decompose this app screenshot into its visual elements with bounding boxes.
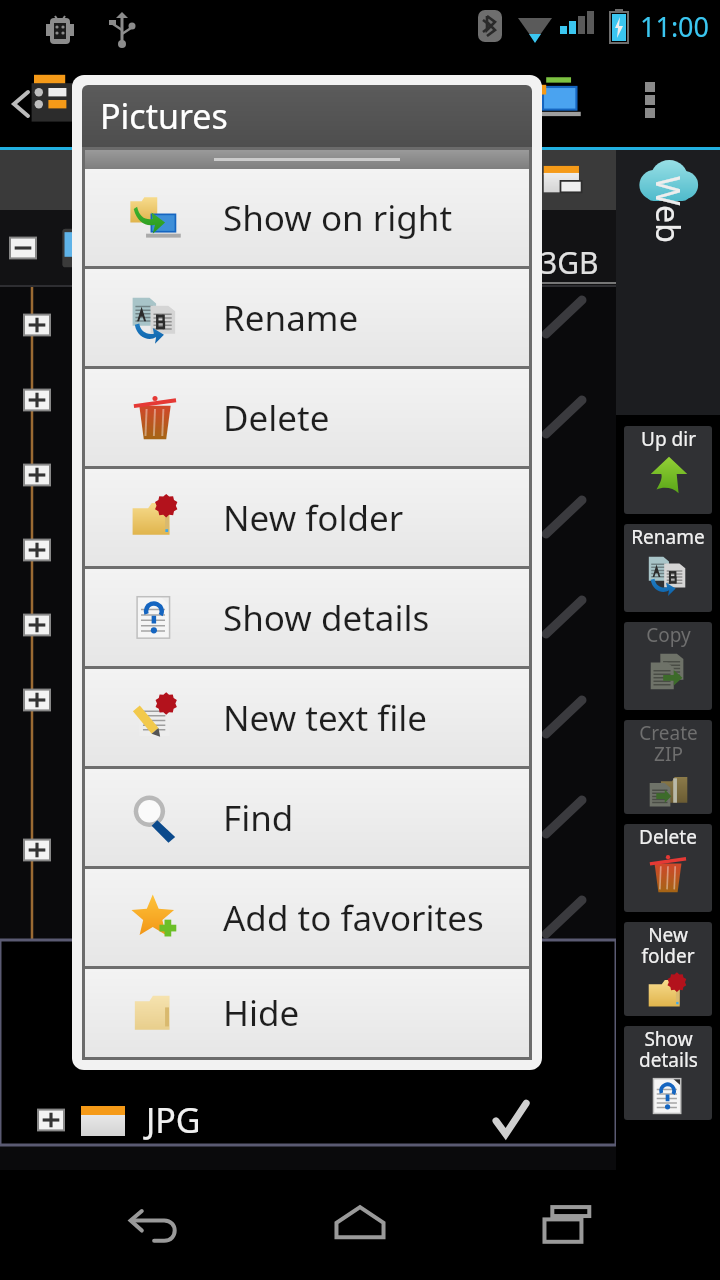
staticText: Add to favorites <box>223 894 484 942</box>
button[interactable]: Recent apps <box>513 1170 623 1280</box>
button[interactable]: Copy <box>624 622 712 710</box>
staticText: New folder <box>223 494 404 542</box>
staticText: Delete <box>639 824 697 850</box>
button[interactable] <box>0 737 616 812</box>
button[interactable]: New text file <box>85 669 529 766</box>
button[interactable] <box>0 437 616 512</box>
button[interactable]: Delete <box>624 824 712 912</box>
button[interactable]: Show details <box>85 569 529 666</box>
staticText: Find <box>223 794 294 842</box>
button[interactable]: New folder <box>85 469 529 566</box>
button[interactable]: Hide <box>85 969 529 1057</box>
button[interactable]: Create ZIP <box>624 720 712 814</box>
button[interactable]: Up dir <box>624 426 712 514</box>
staticText: Rename <box>223 294 359 342</box>
staticText: Show details <box>639 1026 698 1073</box>
button[interactable] <box>0 287 616 362</box>
button[interactable]: New folder <box>624 922 712 1016</box>
button[interactable]: JPG <box>0 1080 616 1160</box>
button[interactable]: Show on right <box>85 169 529 266</box>
staticText: New folder <box>641 922 695 969</box>
staticText: Hide <box>223 989 300 1037</box>
staticText: Copy <box>646 622 691 648</box>
button[interactable]: Find <box>85 769 529 866</box>
staticText: s <box>520 161 534 199</box>
button[interactable]: Show details <box>624 1026 712 1120</box>
button[interactable] <box>0 362 616 437</box>
button[interactable]: Rename <box>85 269 529 366</box>
button[interactable] <box>0 512 616 587</box>
button[interactable]: Add to favorites <box>85 869 529 966</box>
button[interactable] <box>0 587 616 662</box>
staticText: New text file <box>223 694 428 742</box>
button[interactable]: Home <box>305 1170 415 1280</box>
staticText: JPG <box>146 1097 201 1143</box>
staticText: Pictures <box>100 93 228 139</box>
staticText: Web stor… <box>646 176 690 280</box>
button[interactable] <box>0 210 616 285</box>
staticText: 3GB <box>540 242 599 283</box>
button[interactable]: More options <box>620 70 680 130</box>
button[interactable]: Delete <box>85 369 529 466</box>
button[interactable] <box>0 662 616 737</box>
button[interactable]: Web stor… <box>616 150 720 415</box>
staticText: Show details <box>223 594 430 642</box>
staticText: Up dir <box>641 426 696 452</box>
button[interactable]: Rename <box>624 524 712 612</box>
staticText: Create ZIP <box>639 720 698 767</box>
staticText: Delete <box>223 394 330 442</box>
button[interactable] <box>0 812 616 887</box>
button[interactable]: Back <box>98 1170 208 1280</box>
staticText: 11:00 <box>640 8 710 45</box>
staticText: Rename <box>631 524 705 550</box>
staticText: Show on right <box>223 194 453 242</box>
